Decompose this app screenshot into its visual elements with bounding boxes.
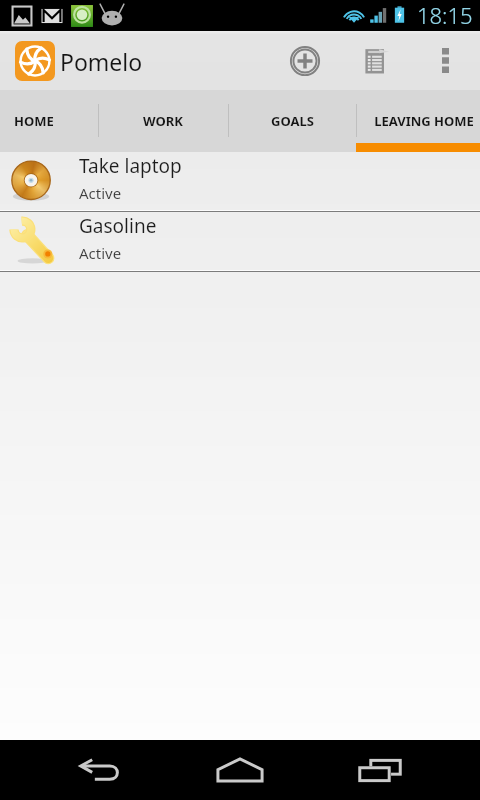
staticText: WORK [143, 112, 183, 130]
staticText: 18:15 [417, 0, 473, 30]
button[interactable]: HOME [0, 90, 98, 152]
staticText: Active [79, 183, 122, 203]
staticText: HOME [14, 112, 54, 130]
button[interactable]: Home [201, 740, 279, 800]
button[interactable]: Lists [340, 31, 410, 90]
button[interactable]: Back [62, 740, 140, 800]
button[interactable]: More options [410, 31, 480, 90]
staticText: Active [79, 243, 122, 263]
button[interactable]: Take laptop [0, 152, 480, 210]
staticText: Gasoline [79, 213, 157, 239]
button[interactable]: WORK [98, 90, 228, 152]
button[interactable]: GOALS [228, 90, 356, 152]
button[interactable]: LEAVING HOME [356, 90, 480, 152]
button[interactable]: Pomelo [0, 31, 151, 90]
button[interactable]: Recent apps [341, 740, 419, 800]
button[interactable]: Gasoline [0, 212, 480, 270]
staticText: LEAVING HOME [374, 112, 474, 130]
staticText: Pomelo [60, 46, 143, 77]
staticText: Take laptop [79, 153, 182, 179]
staticText: GOALS [271, 112, 314, 130]
button[interactable]: Add [270, 31, 340, 90]
